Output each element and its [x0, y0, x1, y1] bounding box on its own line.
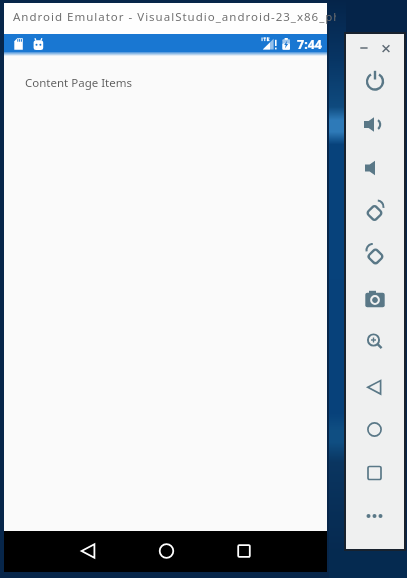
button[interactable] — [357, 237, 393, 273]
button[interactable] — [147, 533, 187, 570]
button[interactable] — [357, 368, 393, 404]
button[interactable] — [357, 194, 393, 230]
button[interactable] — [378, 41, 394, 55]
button[interactable] — [357, 455, 393, 491]
button[interactable] — [357, 411, 393, 447]
button[interactable] — [357, 498, 393, 534]
button[interactable] — [357, 107, 393, 143]
button[interactable] — [68, 533, 108, 570]
button[interactable] — [357, 324, 393, 360]
button[interactable] — [224, 533, 264, 570]
staticText: Content Page Items — [25, 75, 132, 91]
button[interactable] — [357, 281, 393, 317]
staticText: 7:44 — [297, 36, 322, 53]
staticText: Android Emulator - VisualStudio_android-… — [13, 9, 336, 25]
button[interactable] — [357, 63, 393, 99]
button[interactable] — [356, 41, 372, 55]
button[interactable] — [357, 150, 393, 186]
